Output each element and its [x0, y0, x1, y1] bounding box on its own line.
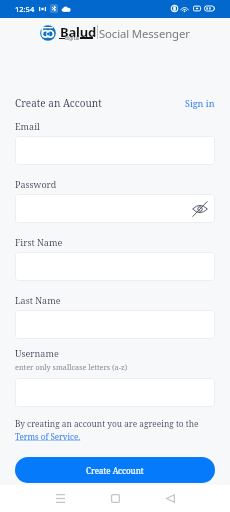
staticText: Social Messenger: [99, 26, 190, 41]
button[interactable]: Show password: [190, 199, 210, 219]
button[interactable]: Sign in: [185, 97, 215, 109]
staticText: Terms of Service.: [15, 431, 81, 442]
staticText: Balud: [60, 23, 96, 41]
staticText: Sign in: [185, 97, 215, 109]
staticText: Create an Account: [15, 96, 102, 110]
button[interactable]: [15, 252, 215, 281]
button[interactable]: Home: [103, 486, 127, 510]
button[interactable]: Recent apps: [48, 486, 72, 510]
staticText: Email: [15, 120, 40, 132]
button[interactable]: Show password: [15, 194, 215, 223]
staticText: enter only smallcase letters (a-z): [15, 362, 128, 372]
button[interactable]: Terms of Service.: [15, 431, 81, 442]
staticText: 12:54: [15, 4, 35, 14]
button[interactable]: Back: [158, 486, 182, 510]
staticText: Last Name: [15, 294, 61, 306]
button[interactable]: [15, 136, 215, 165]
staticText: First Name: [15, 236, 63, 248]
staticText: Create Account: [86, 465, 144, 476]
staticText: Username: [15, 347, 59, 359]
staticText: By creating an account you are agreeing …: [15, 418, 199, 429]
button[interactable]: [15, 310, 215, 339]
staticText: Password: [15, 178, 57, 190]
button[interactable]: [15, 378, 215, 407]
staticText: digital: [65, 35, 80, 41]
button[interactable]: Create Account: [15, 457, 215, 483]
